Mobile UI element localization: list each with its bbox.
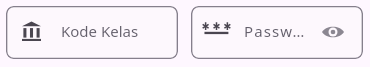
staticText: Kode Kelas (61, 21, 139, 41)
button[interactable]: Kode Kelas (6, 6, 178, 59)
button[interactable]: Show password (311, 10, 355, 53)
staticText: Passw… (244, 21, 306, 41)
button[interactable]: Passw… (191, 6, 363, 59)
